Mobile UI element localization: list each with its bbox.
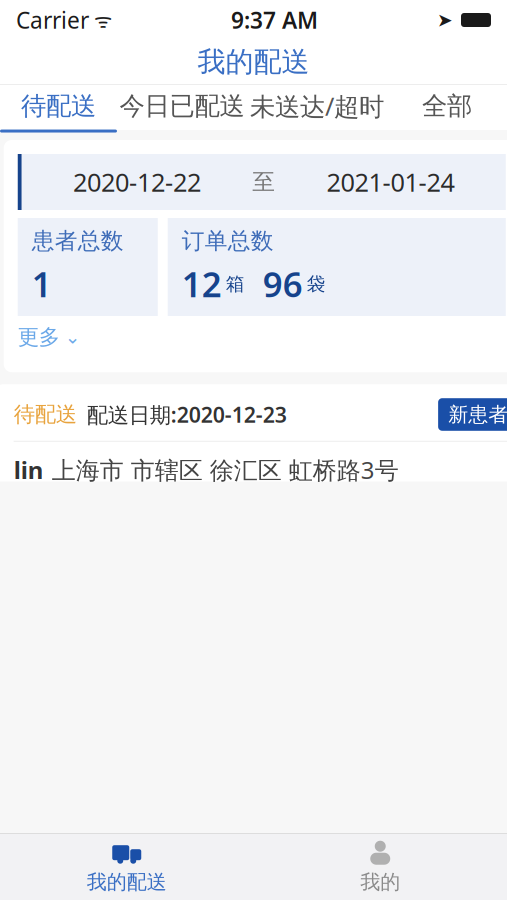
staticText: 新患者 [448,402,507,427]
staticText: 袋 [307,272,326,295]
button[interactable]: 我的 [253,832,507,900]
staticText: 我的配送 [87,870,167,894]
staticText: 更多 [18,324,60,350]
staticText: 12 [182,261,222,307]
staticText: 至 [252,168,275,196]
staticText: 订单总数 [182,227,274,255]
staticText: 2020-12-22 [73,165,201,199]
staticText: 待配送 [21,90,96,121]
staticText: 2021-01-24 [326,165,454,199]
staticText: 今日已配送 [119,90,244,121]
button[interactable]: 我的配送 [0,832,253,900]
staticText: ᯤ [89,7,112,33]
button[interactable]: 更多 [18,316,506,354]
staticText: 患者总数 [32,227,124,255]
staticText: 上海市 市辖区 徐汇区 虹桥路3号 [52,454,399,486]
staticText: 待配送 [14,401,77,428]
staticText: 箱 [226,272,245,295]
staticText: Carrier [16,5,89,35]
button[interactable]: 待配送 [0,85,117,130]
staticText: lin [14,454,44,486]
staticText: 全部 [422,90,472,121]
staticText: 配送日期:2020-12-23 [87,400,287,429]
staticText: 9:37 AM [231,5,318,35]
staticText: 96 [263,261,303,307]
staticText: 我的 [360,870,400,894]
staticText: 未送达/超时 [250,89,384,123]
button[interactable]: 新患者 [438,398,507,431]
button[interactable]: 未送达/超时 [247,85,387,130]
button[interactable]: 全部 [387,85,507,130]
staticText: 1 [32,261,52,307]
staticText: 我的配送 [197,45,309,79]
staticText: ➤ [437,9,453,31]
staticText: ⌄ [65,326,81,348]
button[interactable]: 今日已配送 [117,85,247,130]
